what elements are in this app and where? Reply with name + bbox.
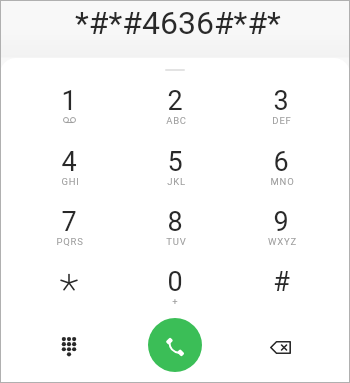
staticText: 3 [273,85,289,117]
staticText: + [172,296,178,307]
button[interactable] [24,256,114,314]
staticText: 6 [273,146,289,178]
button[interactable]: Backspace [256,323,304,371]
staticText: JKL [167,176,186,187]
staticText: 4 [61,146,77,178]
staticText: DEF [272,115,292,126]
staticText: WXYZ [268,236,297,247]
button[interactable]: 8 [130,196,220,254]
button[interactable]: 2 [130,75,220,133]
staticText: # [273,266,290,298]
staticText: TUV [166,236,187,247]
button[interactable]: 4 [24,136,114,194]
button[interactable]: # [236,256,326,314]
staticText: 1 [61,85,77,117]
button[interactable]: 0 [130,256,220,314]
staticText: ABC [166,115,187,126]
button[interactable]: 7 [24,196,114,254]
staticText: 0 [167,266,183,298]
staticText: 8 [167,206,183,238]
staticText: PQRS [56,236,84,247]
staticText: MNO [270,176,295,187]
button[interactable]: Show keypad [45,322,93,370]
staticText: 2 [167,85,183,117]
button[interactable]: Call [148,318,202,372]
button[interactable]: 6 [236,136,326,194]
staticText: 7 [61,206,77,238]
staticText: 5 [167,146,183,178]
button[interactable]: 9 [236,196,326,254]
staticText: *#*#4636#*#* [75,4,281,42]
staticText: 9 [273,206,289,238]
button[interactable]: 3 [236,75,326,133]
button[interactable]: 5 [130,136,220,194]
button[interactable]: 1 [24,75,114,133]
staticText: GHI [61,176,80,187]
